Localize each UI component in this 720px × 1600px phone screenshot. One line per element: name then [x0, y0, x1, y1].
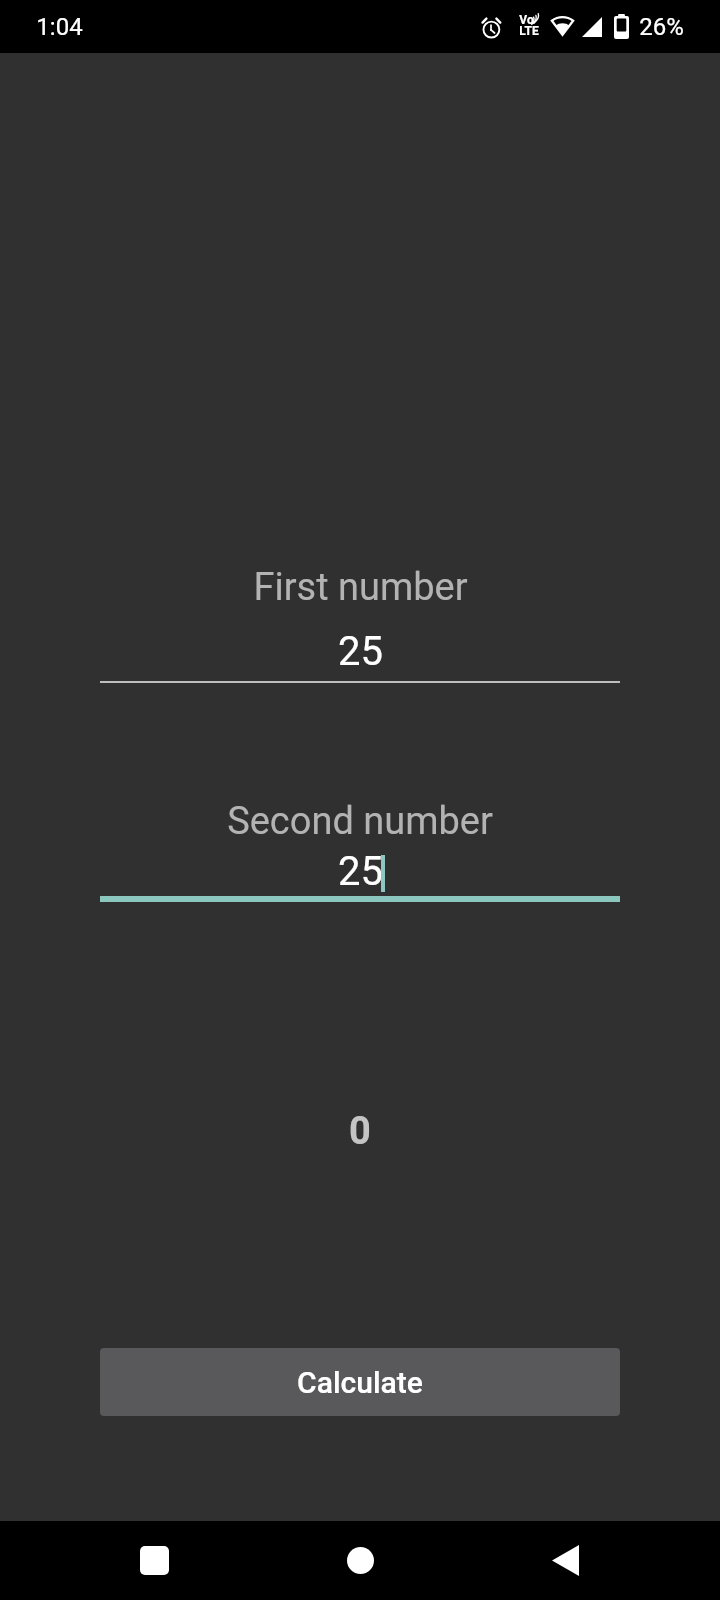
- staticText: 25: [338, 628, 383, 675]
- staticText: Second number: [227, 799, 493, 844]
- staticText: 25: [338, 848, 383, 895]
- staticText: LTE: [519, 24, 539, 38]
- staticText: 1:04: [36, 13, 83, 41]
- staticText: First number: [253, 565, 468, 610]
- button[interactable]: First number: [100, 546, 620, 686]
- button[interactable]: Recents: [116, 1522, 192, 1598]
- staticText: Calculate: [297, 1365, 423, 1400]
- staticText: 26%: [639, 13, 684, 41]
- button[interactable]: Calculate: [100, 1348, 620, 1416]
- staticText: Vo: [519, 13, 534, 27]
- button[interactable]: Home: [322, 1522, 398, 1598]
- staticText: 0: [349, 1109, 371, 1154]
- button[interactable]: Second number: [100, 780, 620, 902]
- button[interactable]: Back: [527, 1522, 603, 1598]
